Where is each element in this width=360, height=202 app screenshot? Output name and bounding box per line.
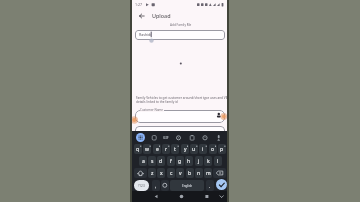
button[interactable]: t: [171, 144, 179, 154]
staticText: GIF: [163, 135, 169, 140]
button[interactable]: .: [206, 180, 214, 191]
staticText: s: [151, 158, 154, 165]
staticText: o: [211, 146, 215, 153]
button[interactable]: x: [157, 168, 165, 178]
button[interactable]: [202, 191, 212, 202]
staticText: ?123: [138, 184, 145, 188]
staticText: b: [188, 170, 192, 177]
staticText: m: [206, 170, 211, 177]
staticText: l: [217, 158, 219, 165]
button[interactable]: [138, 12, 146, 20]
button[interactable]: y: [181, 144, 189, 154]
button[interactable]: q: [134, 144, 142, 154]
staticText: ,: [155, 183, 157, 189]
staticText: a: [142, 158, 145, 165]
button[interactable]: r: [162, 144, 170, 154]
button[interactable]: d: [157, 156, 165, 166]
button[interactable]: g: [176, 156, 184, 166]
staticText: x: [160, 170, 163, 177]
button[interactable]: [135, 30, 225, 40]
button[interactable]: p: [218, 144, 226, 154]
staticText: 1:27: [135, 2, 143, 7]
staticText: v: [179, 170, 182, 177]
button[interactable]: [135, 126, 225, 137]
staticText: i: [202, 146, 204, 153]
staticText: r: [165, 146, 168, 153]
staticText: g: [178, 158, 182, 165]
button[interactable]: [134, 168, 147, 178]
staticText: Customer Name: [140, 108, 164, 112]
button[interactable]: i: [199, 144, 207, 154]
staticText: k: [207, 158, 210, 165]
button[interactable]: v: [176, 168, 184, 178]
staticText: q: [136, 146, 140, 153]
staticText: h: [187, 158, 191, 165]
button[interactable]: s: [148, 156, 156, 166]
button[interactable]: [176, 191, 186, 202]
button[interactable]: [213, 168, 226, 178]
button[interactable]: h: [185, 156, 193, 166]
staticText: e: [156, 146, 159, 153]
button[interactable]: [161, 180, 169, 191]
button[interactable]: c: [167, 168, 175, 178]
staticText: Add Family Me: [170, 23, 192, 27]
button[interactable]: [136, 133, 145, 142]
staticText: t: [174, 146, 176, 153]
button[interactable]: k: [204, 156, 212, 166]
staticText: f: [170, 158, 172, 165]
staticText: Rashidi: [139, 32, 152, 37]
button[interactable]: u: [190, 144, 198, 154]
button[interactable]: [135, 110, 225, 123]
staticText: p: [220, 146, 224, 153]
button[interactable]: n: [195, 168, 203, 178]
staticText: n: [197, 170, 201, 177]
button[interactable]: o: [209, 144, 217, 154]
button[interactable]: j: [195, 156, 203, 166]
staticText: c: [170, 170, 173, 177]
button[interactable]: f: [167, 156, 175, 166]
button[interactable]: w: [143, 144, 151, 154]
button[interactable]: English: [170, 180, 204, 191]
staticText: w: [145, 146, 149, 153]
staticText: d: [159, 158, 163, 165]
staticText: English: [182, 184, 193, 188]
button[interactable]: ,: [152, 180, 160, 191]
staticText: .: [209, 183, 211, 189]
staticText: y: [184, 146, 187, 153]
staticText: Family Vehicles to get customer around/s…: [136, 96, 227, 100]
staticText: Upload: [152, 12, 171, 19]
button[interactable]: [152, 191, 162, 202]
button[interactable]: b: [186, 168, 194, 178]
button[interactable]: [217, 191, 227, 202]
staticText: z: [151, 170, 154, 177]
button[interactable]: l: [214, 156, 222, 166]
button[interactable]: m: [204, 168, 212, 178]
staticText: details linked to the family id: [136, 100, 178, 104]
button[interactable]: e: [153, 144, 161, 154]
button[interactable]: z: [148, 168, 156, 178]
staticText: u: [192, 146, 196, 153]
staticText: j: [198, 158, 200, 165]
button[interactable]: ?123: [134, 180, 149, 191]
button[interactable]: [216, 179, 227, 190]
button[interactable]: a: [139, 156, 147, 166]
